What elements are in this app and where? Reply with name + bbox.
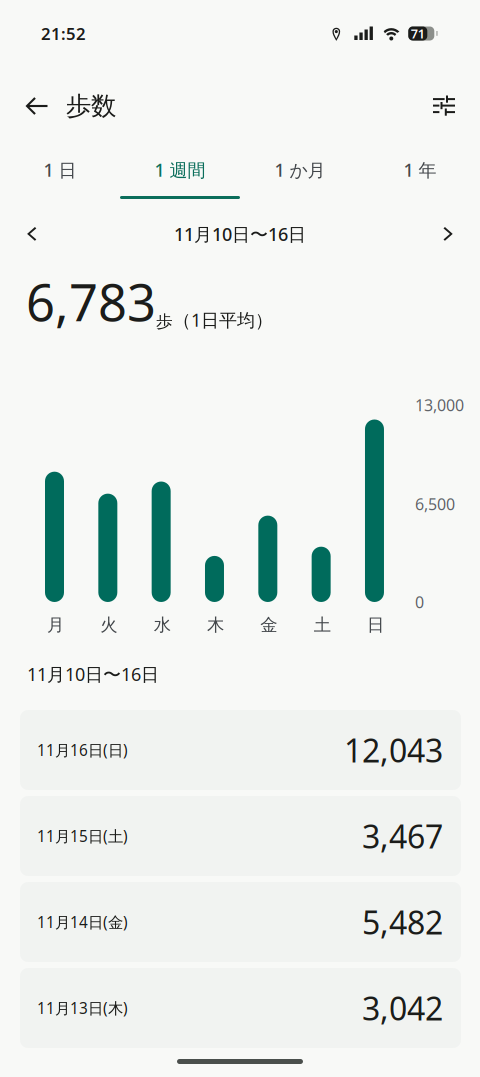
staticText: 6,500 bbox=[415, 493, 455, 515]
staticText: 11月10日〜16日 bbox=[174, 222, 306, 246]
staticText: 1 年 bbox=[403, 157, 436, 182]
staticText: 木 bbox=[207, 614, 224, 636]
staticText: （1日平均） bbox=[173, 307, 273, 332]
button[interactable]: 1 年 bbox=[360, 149, 480, 199]
button[interactable]: 11月13日(木) bbox=[20, 968, 461, 1048]
staticText: 1 か月 bbox=[274, 157, 325, 182]
staticText: 5,482 bbox=[362, 900, 443, 944]
button[interactable]: 11月14日(金) bbox=[20, 882, 461, 962]
staticText: 11月13日(木) bbox=[37, 998, 128, 1018]
button[interactable]: 11月15日(土) bbox=[20, 796, 461, 876]
button[interactable]: 1 日 bbox=[0, 149, 120, 199]
staticText: 月 bbox=[47, 614, 64, 636]
button[interactable]: 1 か月 bbox=[240, 149, 360, 199]
button[interactable]: 次の期間 bbox=[425, 212, 471, 256]
staticText: 1 週間 bbox=[154, 157, 205, 182]
staticText: 11月10日〜16日 bbox=[27, 662, 159, 686]
staticText: 21:52 bbox=[41, 22, 86, 45]
button[interactable]: 戻る bbox=[14, 78, 60, 134]
staticText: 11月15日(土) bbox=[37, 826, 128, 846]
button[interactable]: 前の期間 bbox=[9, 212, 55, 256]
staticText: 火 bbox=[100, 614, 117, 636]
staticText: 11月14日(金) bbox=[37, 912, 128, 932]
staticText: 11月16日(日) bbox=[37, 740, 128, 760]
staticText: 水 bbox=[154, 614, 171, 636]
staticText: 0 bbox=[415, 591, 424, 613]
button[interactable]: 1 週間 bbox=[120, 149, 240, 199]
staticText: 6,783 bbox=[26, 267, 156, 336]
staticText: 3,467 bbox=[362, 814, 443, 858]
staticText: 3,042 bbox=[362, 986, 443, 1030]
button[interactable]: フィルタ bbox=[420, 78, 468, 134]
staticText: 土 bbox=[314, 614, 331, 636]
staticText: 歩数 bbox=[66, 90, 116, 122]
staticText: 日 bbox=[367, 614, 384, 636]
staticText: 金 bbox=[260, 614, 277, 636]
staticText: 歩 bbox=[156, 311, 173, 332]
staticText: 12,043 bbox=[344, 728, 443, 772]
button[interactable]: 11月16日(日) bbox=[20, 710, 461, 790]
staticText: 13,000 bbox=[415, 394, 464, 416]
staticText: 1 日 bbox=[43, 157, 76, 182]
staticText: 71 bbox=[411, 25, 425, 42]
